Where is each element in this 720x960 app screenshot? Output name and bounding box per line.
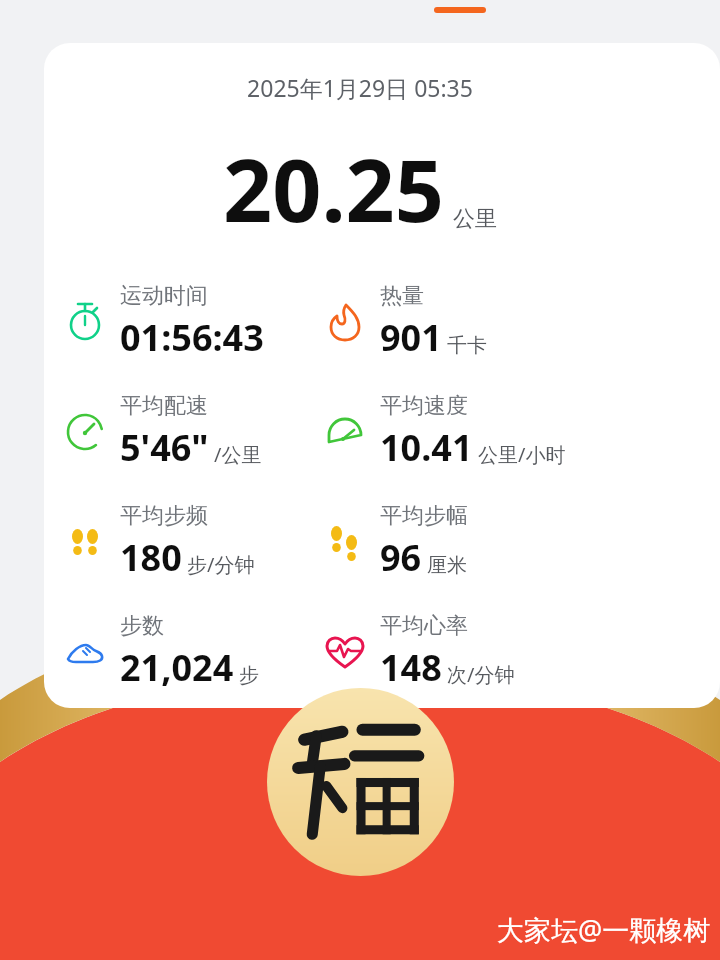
staticText: 5'46"	[120, 423, 209, 472]
staticText: 20.25	[223, 130, 444, 247]
button[interactable]: 平均配速	[62, 392, 320, 472]
staticText: 步数	[120, 612, 164, 640]
staticText: 大家坛@一颗橡树	[497, 911, 711, 948]
staticText: 公里/小时	[478, 441, 566, 468]
button[interactable]: 平均心率	[322, 612, 640, 692]
staticText: 千卡	[447, 333, 487, 358]
staticText: 148	[380, 643, 442, 692]
staticText: 平均速度	[380, 392, 468, 420]
button[interactable]: 热量	[322, 282, 640, 362]
staticText: 平均步频	[120, 502, 208, 530]
staticText: 180	[120, 533, 182, 582]
staticText: 次/分钟	[447, 661, 515, 688]
staticText: 2025年1月29日 05:35	[0, 72, 720, 103]
staticText: 01:56:43	[120, 313, 264, 362]
staticText: 步	[239, 663, 259, 688]
button[interactable]	[434, 7, 486, 13]
staticText: 10.41	[380, 423, 473, 472]
staticText: 热量	[380, 282, 424, 310]
button[interactable]: 平均步频	[62, 502, 320, 582]
staticText: 96	[380, 533, 422, 582]
staticText: 平均配速	[120, 392, 208, 420]
staticText: 平均心率	[380, 612, 468, 640]
staticText: /公里	[214, 441, 262, 468]
staticText: 厘米	[427, 553, 467, 578]
staticText: 平均步幅	[380, 502, 468, 530]
staticText: 21,024	[120, 643, 234, 692]
staticText: 步/分钟	[187, 551, 255, 578]
button[interactable]: 福 blessing	[267, 688, 454, 876]
staticText: 公里	[453, 205, 497, 233]
button[interactable]: 平均步幅	[322, 502, 640, 582]
button[interactable]: 平均速度	[322, 392, 640, 472]
staticText: 901	[380, 313, 442, 362]
button[interactable]: 运动时间	[62, 282, 320, 362]
staticText: 运动时间	[120, 282, 208, 310]
button[interactable]: 步数	[62, 612, 320, 692]
